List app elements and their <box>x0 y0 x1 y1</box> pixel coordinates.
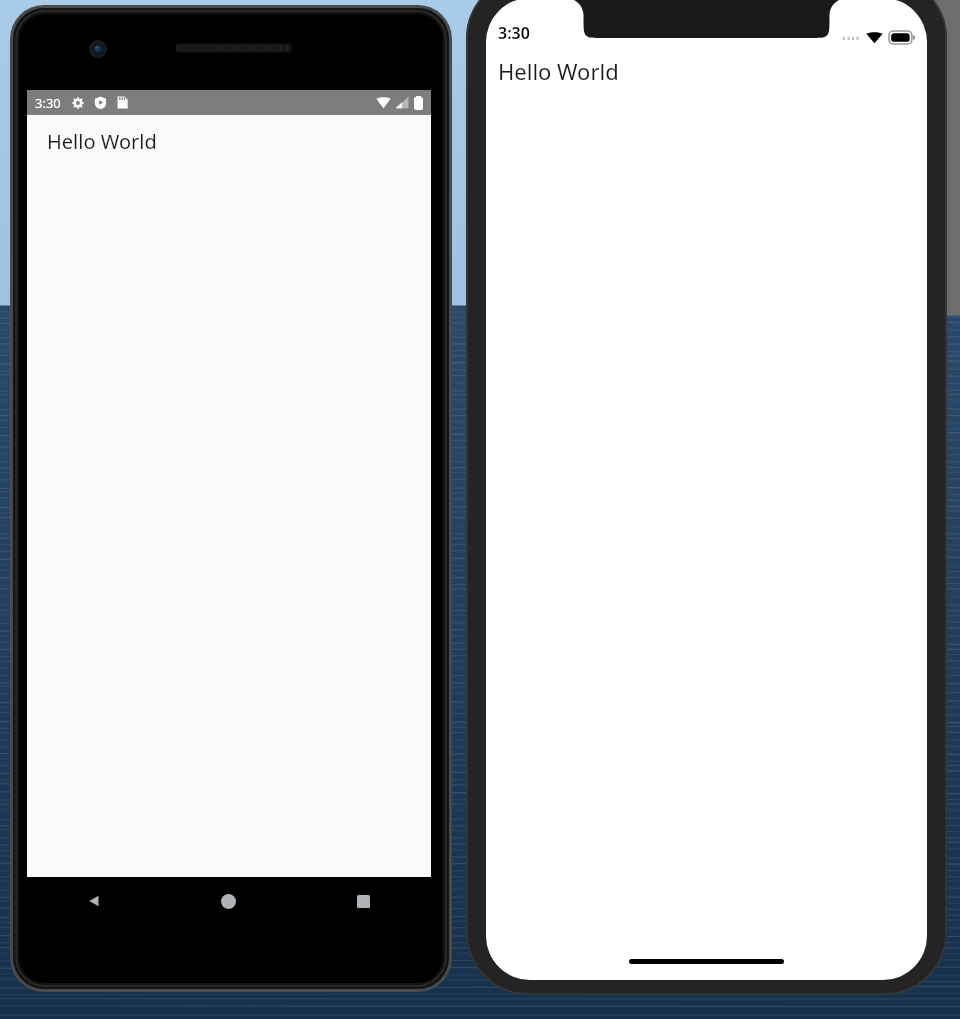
staticText: Hello World <box>47 128 157 155</box>
staticText: 3:30 <box>498 22 530 44</box>
button[interactable]: Recent apps <box>296 877 431 925</box>
staticText: 3:30 <box>35 94 61 112</box>
button[interactable]: Home <box>161 877 296 925</box>
staticText: Hello World <box>498 56 619 86</box>
button[interactable]: Back <box>27 877 161 925</box>
